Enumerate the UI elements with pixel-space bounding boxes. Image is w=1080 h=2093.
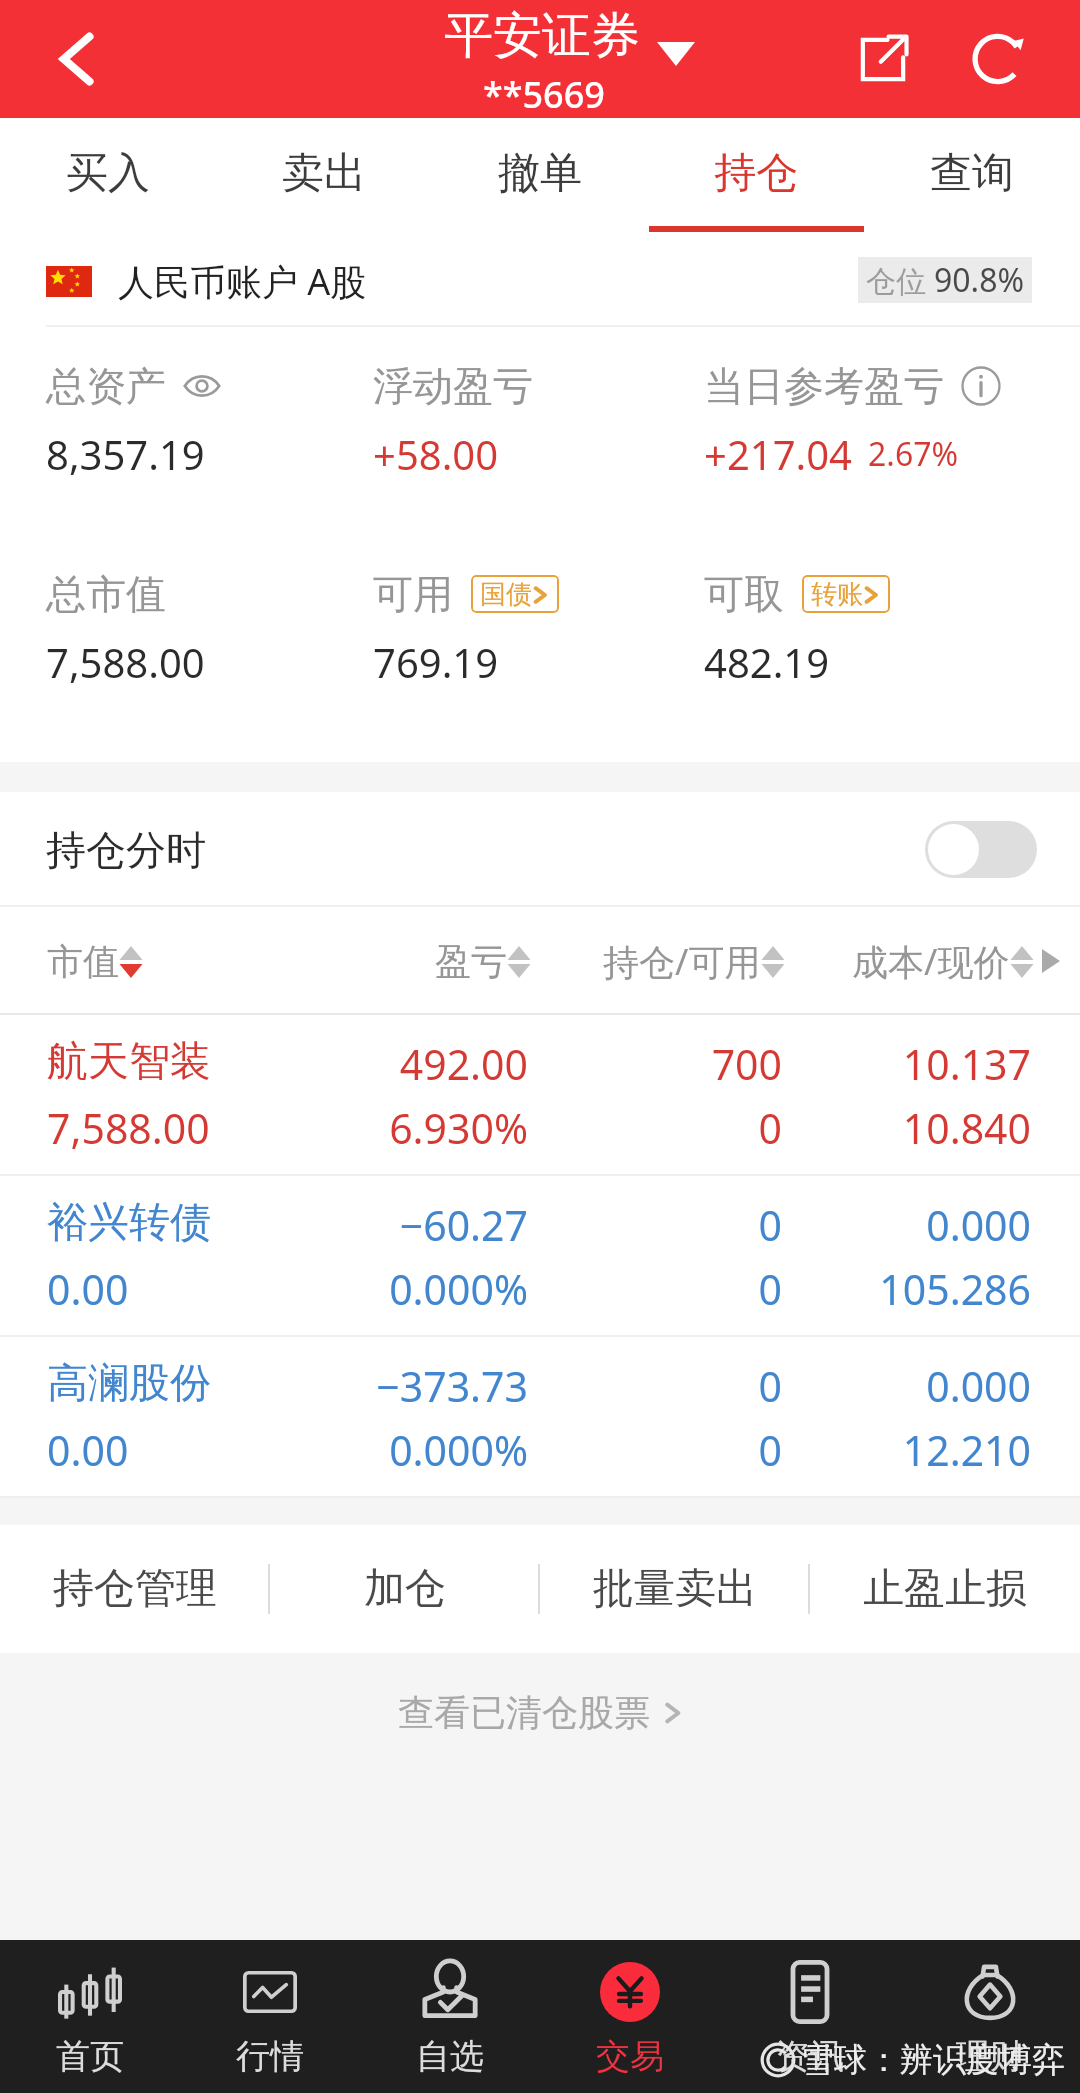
staticText: 资讯	[776, 2035, 844, 2078]
staticText: −373.73	[278, 1358, 528, 1414]
button[interactable]: Info	[960, 365, 1002, 407]
staticText: 105.286	[782, 1261, 1031, 1317]
staticText: +58.00	[373, 427, 499, 481]
button[interactable]: 查看已清仓股票	[398, 1690, 682, 1735]
staticText: +217.04	[704, 427, 852, 481]
staticText: 成本/现价	[852, 937, 1010, 986]
staticText: **5669	[483, 70, 605, 119]
staticText: 0.00	[47, 1422, 278, 1478]
button[interactable]: 航天智装	[0, 1015, 1080, 1176]
staticText: 7,588.00	[47, 1100, 278, 1156]
button[interactable]: 国债	[471, 575, 559, 613]
staticText: 仓位	[866, 260, 934, 301]
button[interactable]: 查询	[864, 118, 1080, 235]
staticText: 国债	[480, 578, 532, 611]
button[interactable]: Toggle intraday chart	[925, 821, 1037, 878]
staticText: 0.000%	[278, 1422, 528, 1478]
button[interactable]: 自选	[360, 1940, 540, 2093]
staticText: 撤单	[498, 147, 582, 200]
staticText: 止盈止损	[863, 1563, 1027, 1615]
staticText: 浮动盈亏	[373, 361, 533, 411]
staticText: 700	[528, 1036, 782, 1092]
staticText: 人民币账户 A股	[118, 257, 367, 306]
button[interactable]: Toggle amount visibility	[182, 366, 222, 406]
staticText: 交易	[596, 2035, 664, 2078]
staticText: 10.840	[782, 1100, 1031, 1156]
staticText: 行情	[236, 2035, 304, 2078]
button[interactable]: 卖出	[216, 118, 432, 235]
button[interactable]: 行情	[180, 1940, 360, 2093]
staticText: 0	[528, 1197, 782, 1253]
button[interactable]: 交易	[540, 1940, 720, 2093]
staticText: 可用	[373, 569, 453, 619]
staticText: 高澜股份	[47, 1358, 278, 1410]
staticText: 盈亏	[435, 939, 507, 984]
staticText: 0.00	[47, 1261, 278, 1317]
staticText: 批量卖出	[593, 1563, 757, 1615]
button[interactable]: 仓位	[858, 257, 1032, 303]
staticText: 7,588.00	[46, 635, 205, 689]
staticText: 加仓	[364, 1563, 446, 1615]
button[interactable]: 批量卖出	[540, 1525, 810, 1653]
staticText: 当日参考盈亏	[704, 361, 944, 411]
staticText: 可取	[704, 569, 784, 619]
staticText: 6.930%	[278, 1100, 528, 1156]
staticText: 首页	[56, 2035, 124, 2078]
button[interactable]: 持仓管理	[0, 1525, 270, 1653]
button[interactable]: 止盈止损	[810, 1525, 1080, 1653]
staticText: 自选	[416, 2035, 484, 2078]
button[interactable]: 首页	[0, 1940, 180, 2093]
staticText: 8,357.19	[46, 427, 205, 481]
staticText: 0.000	[782, 1197, 1031, 1253]
staticText: 90.8%	[934, 258, 1025, 302]
staticText: 持仓管理	[53, 1563, 217, 1615]
button[interactable]: 加仓	[270, 1525, 540, 1653]
staticText: 12.210	[782, 1422, 1031, 1478]
staticText: 482.19	[704, 635, 830, 689]
staticText: 查询	[930, 147, 1014, 200]
button[interactable]: Back	[0, 0, 140, 118]
staticText: 0	[528, 1100, 782, 1156]
staticText: 雪球：辨识度博弈	[801, 2039, 1065, 2081]
staticText: 卖出	[282, 147, 366, 200]
staticText: 持仓/可用	[603, 937, 761, 986]
staticText: −60.27	[278, 1197, 528, 1253]
button[interactable]: 理财	[900, 1940, 1080, 2093]
staticText: 裕兴转债	[47, 1197, 278, 1249]
staticText: 平安证券	[444, 5, 640, 67]
staticText: 市值	[47, 939, 119, 984]
staticText: 2.67%	[868, 432, 959, 476]
staticText: 0	[528, 1422, 782, 1478]
staticText: 0.000%	[278, 1261, 528, 1317]
staticText: 查看已清仓股票	[398, 1690, 650, 1735]
button[interactable]: 持仓	[648, 118, 864, 235]
button[interactable]: 资讯	[720, 1940, 900, 2093]
button[interactable]: 买入	[0, 118, 216, 235]
button[interactable]: 转账	[802, 575, 890, 613]
staticText: 总资产	[46, 361, 166, 411]
staticText: 0.000	[782, 1358, 1031, 1414]
button[interactable]: 平安证券	[406, 0, 706, 118]
staticText: 10.137	[782, 1036, 1031, 1092]
button[interactable]: 高澜股份	[0, 1337, 1080, 1498]
staticText: 买入	[66, 147, 150, 200]
staticText: 492.00	[278, 1036, 528, 1092]
staticText: 持仓分时	[46, 825, 206, 875]
staticText: 航天智装	[47, 1036, 278, 1088]
button[interactable]: 撤单	[432, 118, 648, 235]
button[interactable]: 裕兴转债	[0, 1176, 1080, 1337]
staticText: 转账	[811, 578, 863, 611]
staticText: 理财	[956, 2035, 1024, 2078]
staticText: 总市值	[46, 569, 166, 619]
staticText: 0	[528, 1261, 782, 1317]
staticText: 0	[528, 1358, 782, 1414]
button[interactable]: Share	[822, 0, 944, 118]
staticText: 769.19	[373, 635, 499, 689]
button[interactable]: Refresh	[944, 0, 1055, 118]
staticText: 持仓	[714, 147, 798, 200]
